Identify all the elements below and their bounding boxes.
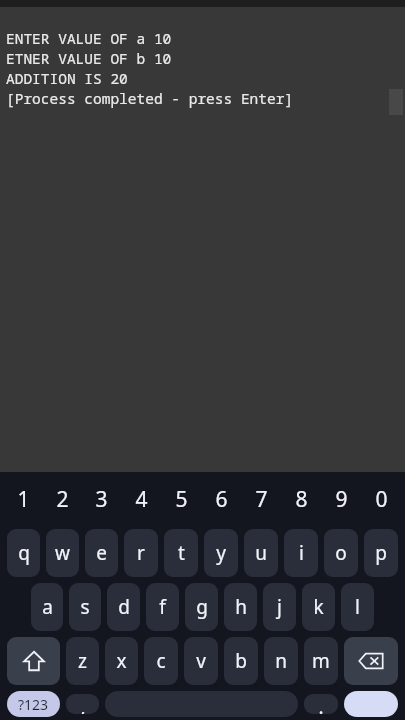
- button[interactable]: f: [146, 583, 179, 631]
- button[interactable]: n: [264, 637, 298, 685]
- button[interactable]: Backspace: [344, 637, 398, 685]
- staticText: 9: [335, 485, 348, 514]
- button[interactable]: g: [185, 583, 218, 631]
- staticText: 2: [56, 485, 69, 514]
- button[interactable]: z: [66, 637, 99, 685]
- button[interactable]: x: [105, 637, 138, 685]
- staticText: 5: [175, 485, 188, 514]
- staticText: 8: [295, 485, 308, 514]
- button[interactable]: w: [46, 529, 79, 577]
- staticText: [Process completed - press Enter]: [6, 88, 294, 108]
- staticText: b: [235, 648, 247, 674]
- button[interactable]: d: [107, 583, 140, 631]
- staticText: q: [18, 540, 30, 566]
- button[interactable]: Enter: [344, 691, 398, 717]
- button[interactable]: h: [224, 583, 257, 631]
- button[interactable]: u: [244, 529, 278, 577]
- staticText: w: [55, 540, 70, 566]
- staticText: 4: [135, 485, 148, 514]
- staticText: l: [355, 594, 360, 620]
- button[interactable]: j: [263, 583, 296, 631]
- button[interactable]: ,: [66, 694, 99, 714]
- button[interactable]: r: [124, 529, 158, 577]
- button[interactable]: 2: [43, 472, 82, 526]
- staticText: k: [313, 594, 324, 620]
- button[interactable]: ?123: [7, 691, 60, 717]
- staticText: m: [312, 648, 330, 674]
- button[interactable]: t: [164, 529, 198, 577]
- staticText: c: [156, 648, 166, 674]
- button[interactable]: e: [85, 529, 118, 577]
- button[interactable]: q: [7, 529, 40, 577]
- staticText: g: [196, 594, 208, 620]
- staticText: a: [42, 594, 53, 620]
- staticText: f: [159, 594, 166, 620]
- button[interactable]: l: [341, 583, 374, 631]
- button[interactable]: c: [144, 637, 178, 685]
- staticText: 0: [375, 485, 388, 514]
- button[interactable]: 1: [4, 472, 43, 526]
- button[interactable]: .: [304, 694, 338, 714]
- button[interactable]: i: [284, 529, 318, 577]
- button[interactable]: p: [364, 529, 398, 577]
- staticText: 6: [215, 485, 228, 514]
- button[interactable]: Shift: [7, 637, 60, 685]
- staticText: v: [196, 648, 206, 674]
- staticText: t: [178, 540, 185, 566]
- button[interactable]: 3: [82, 472, 121, 526]
- staticText: x: [116, 648, 127, 674]
- staticText: ADDITION IS 20: [6, 68, 128, 88]
- staticText: h: [235, 594, 247, 620]
- button[interactable]: 0: [361, 472, 401, 526]
- button[interactable]: 6: [201, 472, 241, 526]
- staticText: i: [299, 540, 304, 566]
- button[interactable]: b: [224, 637, 258, 685]
- button[interactable]: 4: [121, 472, 161, 526]
- button[interactable]: 8: [281, 472, 321, 526]
- button[interactable]: v: [184, 637, 218, 685]
- staticText: .: [318, 694, 324, 714]
- staticText: d: [118, 594, 130, 620]
- button[interactable]: 7: [241, 472, 281, 526]
- staticText: e: [96, 540, 107, 566]
- staticText: 1: [17, 485, 30, 514]
- staticText: u: [255, 540, 267, 566]
- staticText: y: [216, 540, 226, 566]
- staticText: 3: [95, 485, 108, 514]
- staticText: ETNER VALUE OF b 10: [6, 48, 172, 68]
- button[interactable]: s: [69, 583, 101, 631]
- staticText: p: [375, 540, 387, 566]
- staticText: n: [275, 648, 287, 674]
- staticText: ?123: [18, 695, 49, 714]
- button[interactable]: o: [324, 529, 358, 577]
- staticText: o: [335, 540, 347, 566]
- button[interactable]: 9: [321, 472, 361, 526]
- staticText: 7: [255, 485, 268, 514]
- button[interactable]: a: [31, 583, 63, 631]
- staticText: j: [277, 594, 282, 620]
- staticText: s: [80, 594, 90, 620]
- staticText: z: [78, 648, 87, 674]
- staticText: ,: [80, 694, 86, 714]
- staticText: ENTER VALUE OF a 10: [6, 28, 172, 48]
- button[interactable]: m: [304, 637, 338, 685]
- button[interactable]: y: [204, 529, 238, 577]
- button[interactable]: 5: [161, 472, 201, 526]
- button[interactable]: k: [302, 583, 335, 631]
- staticText: r: [137, 540, 145, 566]
- button[interactable]: [105, 691, 298, 717]
